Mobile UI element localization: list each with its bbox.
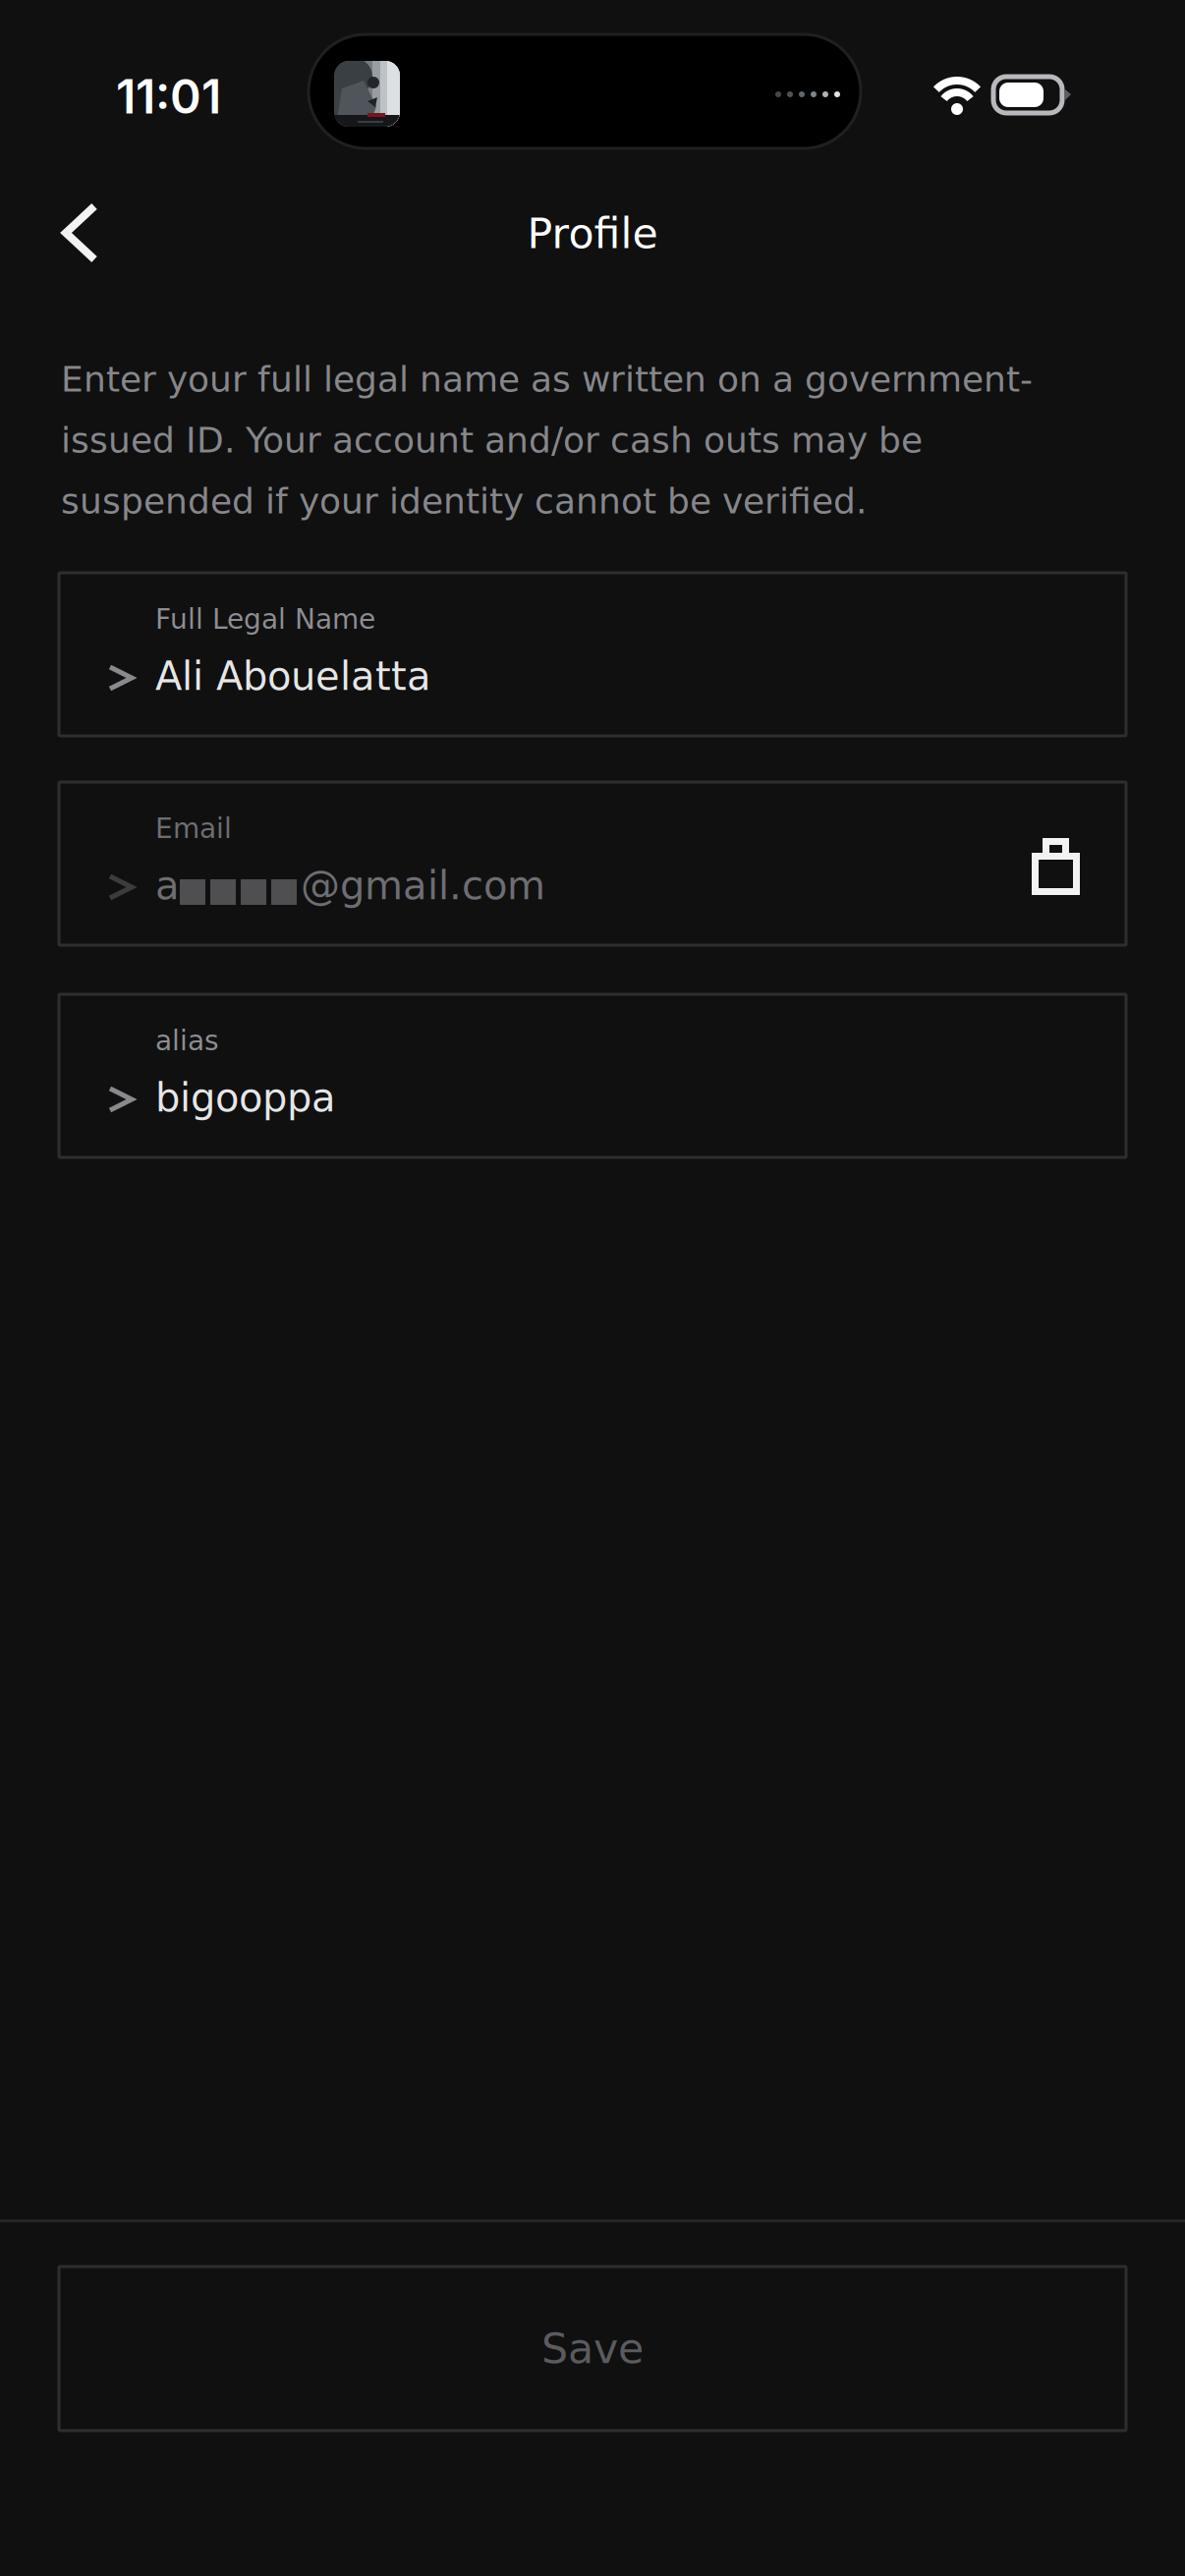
staticText: Save xyxy=(541,2324,644,2373)
button[interactable]: alias xyxy=(59,994,1126,1157)
staticText: Full Legal Name xyxy=(155,603,375,635)
staticText: suspended if your identity cannot be ver… xyxy=(61,480,867,522)
staticText: alias xyxy=(155,1025,219,1057)
button[interactable]: Save xyxy=(59,2267,1126,2431)
staticText: Email xyxy=(155,812,232,845)
staticText: @gmail.com xyxy=(301,863,545,908)
staticText: bigooppa xyxy=(155,1075,336,1121)
staticText: issued ID. Your account and/or cash outs… xyxy=(61,420,923,461)
staticText: 11:01 xyxy=(116,68,221,125)
button[interactable]: Back xyxy=(26,173,143,291)
button[interactable]: Email xyxy=(59,782,1126,945)
staticText: Ali Abouelatta xyxy=(155,653,431,699)
staticText: a xyxy=(155,863,180,908)
button[interactable]: Full Legal Name xyxy=(59,573,1126,736)
staticText: Enter your full legal name as written on… xyxy=(61,359,1033,400)
staticText: Profile xyxy=(527,209,658,258)
